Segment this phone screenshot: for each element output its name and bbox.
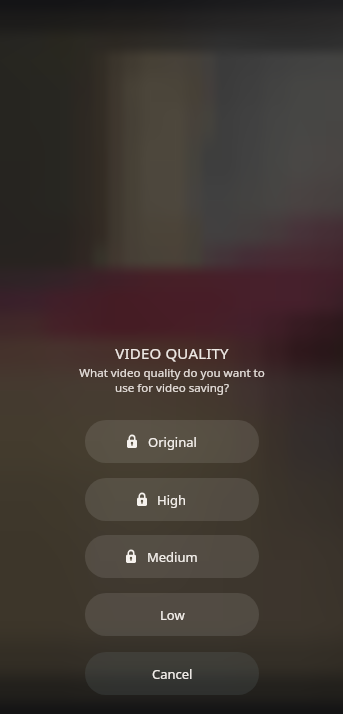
staticText: Cancel [152, 665, 193, 683]
staticText: VIDEO QUALITY [115, 343, 229, 363]
staticText: What video quality do you want to use fo… [79, 365, 265, 396]
staticText: High [157, 491, 187, 509]
button[interactable]: Original [85, 420, 259, 463]
button[interactable]: Cancel [85, 652, 259, 695]
staticText: Low [160, 606, 185, 624]
button[interactable]: High [85, 478, 259, 521]
button[interactable]: Low [85, 593, 259, 636]
staticText: Original [148, 433, 197, 451]
button[interactable]: Medium [85, 535, 259, 578]
staticText: Medium [147, 548, 198, 566]
